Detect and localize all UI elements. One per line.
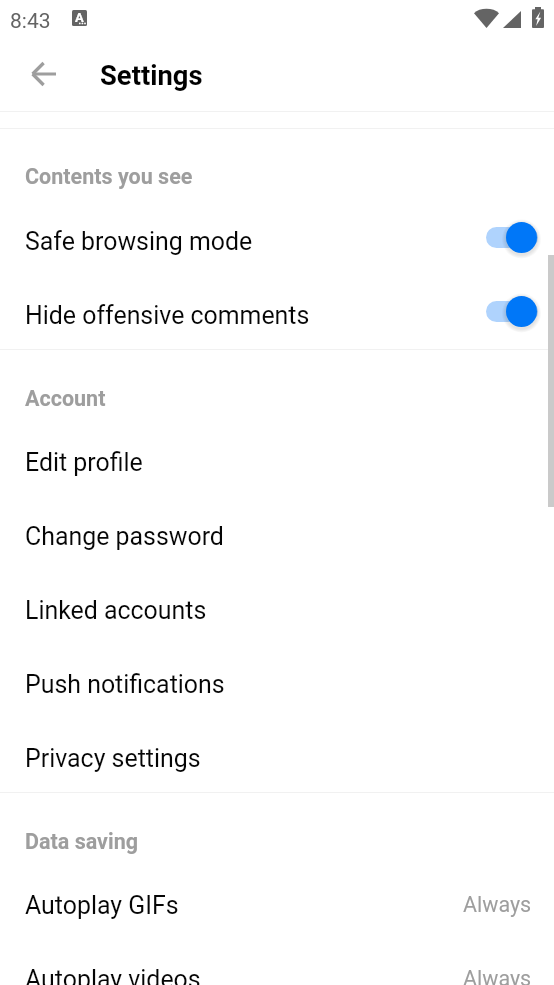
staticText: 8:43 [10,9,51,34]
button[interactable]: Hide offensive comments, on [486,296,539,327]
button[interactable]: Change password [0,500,554,574]
button[interactable]: Linked accounts [0,574,554,648]
button[interactable]: Privacy settings [0,722,554,796]
staticText: Linked accounts [25,596,207,625]
button[interactable]: Safe browsing mode, on [486,222,539,253]
staticText: Hide offensive comments [25,301,310,330]
staticText: Push notifications [25,670,225,699]
staticText: Always [463,966,532,985]
staticText: A [75,10,84,25]
staticText: Autoplay videos [25,965,201,985]
staticText: Contents you see [25,164,193,189]
staticText: Change password [25,522,224,551]
button[interactable]: Autoplay GIFs [0,869,554,943]
button[interactable]: Back [19,50,67,98]
button[interactable]: Edit profile [0,426,554,500]
button[interactable]: Hide offensive comments [0,279,554,353]
staticText: Safe browsing mode [25,227,253,256]
staticText: Data saving [25,829,138,854]
staticText: Edit profile [25,448,143,477]
staticText: Autoplay GIFs [25,891,179,920]
staticText: Always [463,892,532,917]
button[interactable]: Push notifications [0,648,554,722]
button[interactable]: Safe browsing mode [0,205,554,279]
staticText: Account [25,386,106,411]
staticText: Settings [100,60,203,92]
button[interactable]: Autoplay videos [0,943,554,985]
staticText: Privacy settings [25,744,201,773]
